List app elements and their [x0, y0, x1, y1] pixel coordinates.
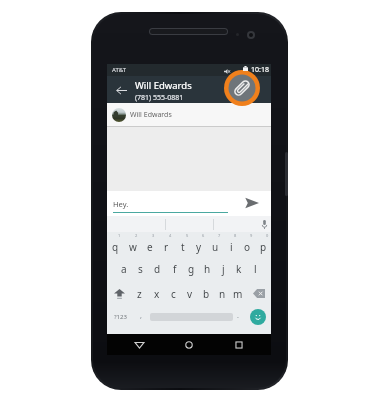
staticText: ,: [140, 311, 142, 321]
button[interactable]: 3: [141, 232, 158, 256]
staticText: s: [138, 262, 143, 276]
button[interactable]: b: [198, 281, 214, 306]
staticText: x: [154, 287, 160, 301]
button[interactable]: l: [247, 256, 263, 281]
staticText: z: [137, 287, 142, 301]
button[interactable]: Back: [121, 334, 157, 355]
staticText: 7: [218, 233, 221, 238]
button[interactable]: x: [148, 281, 165, 306]
button[interactable]: Home: [171, 334, 207, 355]
button[interactable]: g: [183, 256, 199, 281]
staticText: 3: [152, 233, 155, 238]
staticText: j: [222, 262, 225, 276]
staticText: 4: [169, 233, 172, 238]
staticText: u: [212, 240, 219, 254]
button[interactable]: ?123: [108, 306, 132, 328]
staticText: 5: [186, 233, 189, 238]
button[interactable]: a: [115, 256, 132, 281]
button[interactable]: Emoji: [246, 306, 270, 328]
button[interactable]: Backspace: [246, 281, 271, 306]
staticText: 9: [250, 233, 253, 238]
button[interactable]: s: [132, 256, 149, 281]
staticText: b: [203, 287, 210, 301]
button[interactable]: Recents: [221, 334, 257, 355]
button[interactable]: j: [215, 256, 231, 281]
staticText: c: [171, 287, 176, 301]
staticText: w: [129, 240, 137, 254]
staticText: p: [260, 240, 267, 254]
staticText: d: [154, 262, 161, 276]
staticText: (781) 555-0881: [135, 93, 184, 103]
staticText: q: [112, 240, 119, 254]
button[interactable]: 9: [239, 232, 255, 256]
button[interactable]: Voice input: [257, 217, 271, 231]
staticText: k: [236, 262, 242, 276]
staticText: m: [233, 287, 243, 301]
staticText: a: [121, 262, 127, 276]
staticText: e: [147, 240, 153, 254]
staticText: t: [181, 240, 185, 254]
staticText: AT&T: [112, 66, 126, 74]
staticText: o: [244, 240, 251, 254]
button[interactable]: 0: [255, 232, 271, 256]
staticText: 2: [135, 233, 138, 238]
staticText: Will Edwards: [130, 110, 172, 120]
staticText: i: [230, 240, 233, 254]
button[interactable]: 7: [207, 232, 223, 256]
staticText: 10:18: [251, 65, 269, 75]
staticText: 0: [266, 233, 269, 238]
button[interactable]: c: [165, 281, 182, 306]
staticText: 6: [202, 233, 205, 238]
button[interactable]: 8: [223, 232, 239, 256]
button[interactable]: 2: [124, 232, 141, 256]
button[interactable]: n: [214, 281, 230, 306]
button[interactable]: Shift: [107, 281, 131, 306]
staticText: f: [173, 262, 177, 276]
staticText: g: [188, 262, 195, 276]
staticText: l: [254, 262, 257, 276]
staticText: h: [204, 262, 211, 276]
button[interactable]: h: [199, 256, 215, 281]
staticText: n: [219, 287, 226, 301]
staticText: v: [187, 287, 193, 301]
button[interactable]: z: [131, 281, 148, 306]
staticText: Will Edwards: [135, 79, 192, 92]
button[interactable]: Will Edwards: [107, 103, 271, 126]
button[interactable]: v: [182, 281, 198, 306]
button[interactable]: 5: [175, 232, 191, 256]
button[interactable]: 4: [158, 232, 175, 256]
staticText: .: [237, 311, 239, 321]
button[interactable]: 1: [107, 232, 124, 256]
staticText: r: [164, 240, 169, 254]
staticText: ?123: [114, 313, 127, 321]
staticText: Hey.: [113, 199, 129, 209]
button[interactable]: .: [231, 306, 245, 328]
staticText: 1: [118, 233, 121, 238]
staticText: y: [196, 240, 202, 254]
button[interactable]: f: [166, 256, 183, 281]
button[interactable]: [148, 306, 235, 328]
button[interactable]: Send: [241, 192, 263, 214]
button[interactable]: Back: [111, 80, 131, 100]
staticText: 8: [234, 233, 237, 238]
button[interactable]: ,: [133, 306, 148, 328]
button[interactable]: m: [230, 281, 246, 306]
button[interactable]: 6: [191, 232, 207, 256]
button[interactable]: k: [231, 256, 247, 281]
button[interactable]: Attach: [224, 70, 260, 106]
button[interactable]: d: [149, 256, 166, 281]
